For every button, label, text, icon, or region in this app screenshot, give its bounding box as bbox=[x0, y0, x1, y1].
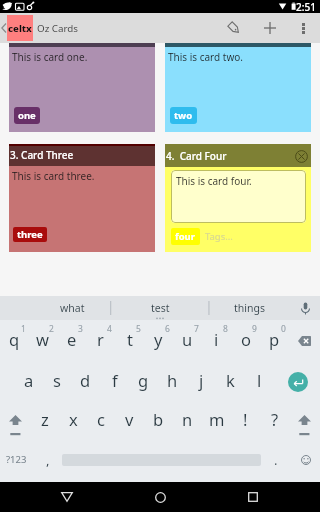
button[interactable]: m bbox=[202, 401, 231, 440]
button[interactable]: This is card four. bbox=[171, 170, 306, 223]
staticText: 2 bbox=[49, 323, 54, 335]
button[interactable]: 6 bbox=[144, 323, 173, 362]
button[interactable]: More options bbox=[286, 13, 320, 43]
button[interactable]: Shift bbox=[289, 401, 320, 440]
button[interactable]: 7 bbox=[173, 323, 202, 362]
button[interactable]: Home bbox=[134, 482, 186, 512]
button[interactable]: Enter bbox=[276, 362, 320, 401]
button[interactable]: 2 bbox=[28, 323, 57, 362]
staticText: l bbox=[257, 369, 262, 391]
staticText: 5 bbox=[136, 323, 141, 335]
button[interactable]: 8 bbox=[202, 323, 231, 362]
button[interactable]: ?123 bbox=[0, 440, 33, 479]
staticText: y bbox=[154, 328, 163, 350]
staticText: 4. Card Four bbox=[166, 149, 227, 163]
staticText: 3 bbox=[78, 323, 83, 335]
staticText: h bbox=[167, 369, 178, 391]
button[interactable]: 3 bbox=[57, 323, 86, 362]
staticText: k bbox=[226, 369, 235, 391]
button[interactable]: v bbox=[115, 401, 144, 440]
button[interactable]: n bbox=[173, 401, 202, 440]
button[interactable]: ! bbox=[231, 401, 260, 440]
button[interactable]: s bbox=[43, 362, 71, 401]
button[interactable]: 4. Card Four bbox=[165, 144, 311, 167]
staticText: ?123 bbox=[6, 453, 27, 466]
button[interactable]: j bbox=[187, 362, 216, 401]
button[interactable]: . bbox=[261, 440, 291, 479]
button[interactable]: b bbox=[144, 401, 173, 440]
staticText: 8 bbox=[223, 323, 228, 335]
staticText: one bbox=[18, 109, 36, 122]
button[interactable]: l bbox=[245, 362, 274, 401]
staticText: what bbox=[60, 301, 85, 315]
button[interactable]: a bbox=[15, 362, 43, 401]
staticText: o bbox=[241, 328, 251, 350]
button[interactable]: ? bbox=[260, 401, 289, 440]
button[interactable]: This is card one. bbox=[9, 43, 155, 132]
button[interactable]: celtx bbox=[7, 15, 33, 41]
staticText: s bbox=[53, 369, 61, 391]
staticText: 3. Card Three bbox=[10, 148, 74, 162]
staticText: ! bbox=[243, 408, 248, 430]
staticText: x bbox=[69, 408, 78, 430]
button[interactable]: h bbox=[158, 362, 187, 401]
button[interactable]: two bbox=[170, 107, 197, 124]
staticText: q bbox=[9, 328, 20, 350]
button[interactable]: Voice input bbox=[290, 296, 320, 320]
button[interactable]: k bbox=[216, 362, 245, 401]
staticText: w bbox=[36, 328, 49, 350]
staticText: t bbox=[127, 328, 133, 350]
button[interactable]: 3. Card Three bbox=[9, 144, 155, 252]
staticText: b bbox=[153, 408, 164, 430]
button[interactable]: Back bbox=[41, 482, 93, 512]
button[interactable]: x bbox=[59, 401, 87, 440]
button[interactable]: 1 bbox=[0, 323, 28, 362]
button[interactable]: what bbox=[0, 296, 111, 320]
button[interactable]: , bbox=[33, 440, 62, 479]
button[interactable]: g bbox=[129, 362, 158, 401]
button[interactable]: c bbox=[87, 401, 115, 440]
button[interactable]: Emoji bbox=[291, 440, 320, 479]
button[interactable]: Navigate up bbox=[0, 13, 7, 43]
staticText: a bbox=[24, 369, 34, 391]
staticText: celtx bbox=[8, 22, 32, 35]
staticText: z bbox=[41, 408, 49, 430]
button[interactable]: z bbox=[31, 401, 59, 440]
button[interactable]: test bbox=[111, 296, 209, 320]
button[interactable]: things bbox=[209, 296, 290, 320]
staticText: 7 bbox=[194, 323, 199, 335]
button[interactable]: Close editor bbox=[291, 146, 311, 166]
button[interactable]: Backspace bbox=[289, 321, 320, 360]
staticText: u bbox=[182, 328, 193, 350]
staticText: m bbox=[209, 408, 225, 430]
button[interactable]: Add card bbox=[254, 13, 286, 43]
staticText: r bbox=[97, 328, 104, 350]
staticText: 6 bbox=[165, 323, 170, 335]
staticText: n bbox=[182, 408, 193, 430]
staticText: ? bbox=[271, 408, 279, 430]
button[interactable]: three bbox=[13, 227, 47, 242]
button[interactable]: Recent apps bbox=[227, 482, 279, 512]
button[interactable]: This is card two. bbox=[165, 43, 311, 132]
button[interactable]: 9 bbox=[231, 323, 260, 362]
staticText: test bbox=[151, 301, 170, 315]
button[interactable]: 5 bbox=[115, 323, 144, 362]
staticText: c bbox=[97, 408, 105, 430]
staticText: 1 bbox=[21, 323, 26, 335]
button[interactable]: 4 bbox=[86, 323, 115, 362]
button[interactable]: Space bbox=[62, 440, 261, 479]
button[interactable]: 0 bbox=[260, 323, 289, 362]
staticText: This is card one. bbox=[12, 50, 88, 64]
button[interactable]: f bbox=[100, 362, 129, 401]
staticText: p bbox=[269, 328, 280, 350]
staticText: 4 bbox=[107, 323, 112, 335]
staticText: two bbox=[174, 109, 193, 122]
button[interactable]: one bbox=[14, 107, 40, 124]
button[interactable]: Tags bbox=[214, 13, 254, 43]
button[interactable]: Shift bbox=[0, 401, 31, 440]
button[interactable]: four bbox=[171, 228, 200, 245]
staticText: things bbox=[234, 301, 265, 315]
staticText: f bbox=[112, 369, 118, 391]
staticText: d bbox=[80, 369, 91, 391]
button[interactable]: d bbox=[71, 362, 100, 401]
